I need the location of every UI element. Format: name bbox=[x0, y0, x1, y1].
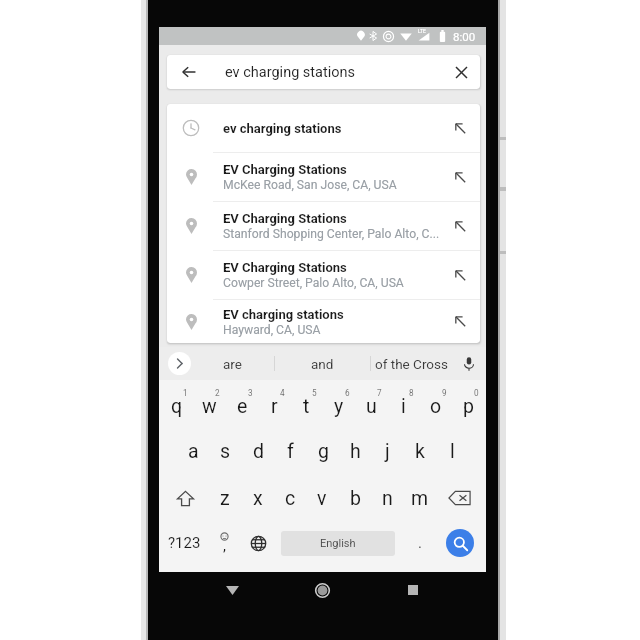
button[interactable]: Insert suggestion bbox=[447, 153, 473, 201]
button[interactable]: x bbox=[242, 476, 274, 520]
button[interactable]: Back bbox=[167, 55, 480, 89]
button[interactable]: Shift bbox=[161, 476, 209, 520]
staticText: v bbox=[317, 487, 327, 510]
button[interactable]: Backspace bbox=[435, 476, 483, 520]
staticText: English bbox=[320, 537, 356, 550]
button[interactable]: are bbox=[192, 347, 272, 380]
staticText: m bbox=[411, 487, 429, 510]
staticText: p bbox=[463, 395, 474, 418]
staticText: EV Charging Stations bbox=[223, 260, 347, 275]
staticText: Stanford Shopping Center, Palo Alto, C..… bbox=[223, 227, 440, 241]
button[interactable]: k bbox=[404, 429, 436, 473]
staticText: u bbox=[366, 395, 377, 418]
staticText: b bbox=[350, 487, 361, 510]
staticText: z bbox=[220, 487, 230, 510]
button[interactable]: z bbox=[209, 476, 241, 520]
staticText: n bbox=[382, 487, 393, 510]
staticText: and bbox=[311, 356, 334, 372]
button[interactable]: i bbox=[387, 384, 419, 428]
button[interactable]: Change language bbox=[242, 522, 274, 564]
button[interactable]: ?123 bbox=[162, 522, 206, 564]
button[interactable]: s bbox=[209, 429, 241, 473]
button[interactable]: h bbox=[339, 429, 371, 473]
button[interactable]: c bbox=[274, 476, 306, 520]
button[interactable]: ev charging stations bbox=[167, 104, 480, 152]
button[interactable]: Clear search bbox=[444, 55, 478, 89]
button[interactable]: and bbox=[282, 347, 362, 380]
button[interactable]: l bbox=[436, 429, 468, 473]
button[interactable]: g bbox=[307, 429, 339, 473]
button[interactable]: j bbox=[371, 429, 403, 473]
button[interactable]: o bbox=[420, 384, 452, 428]
button[interactable]: p bbox=[452, 384, 484, 428]
button[interactable]: b bbox=[339, 476, 371, 520]
staticText: ev charging stations bbox=[225, 64, 356, 81]
staticText: h bbox=[350, 440, 361, 463]
button[interactable]: Insert suggestion bbox=[447, 104, 473, 152]
staticText: 6 bbox=[345, 388, 350, 398]
button[interactable]: EV Charging Stations bbox=[167, 251, 480, 299]
button[interactable]: t bbox=[290, 384, 322, 428]
staticText: LTE bbox=[418, 28, 426, 34]
staticText: 1 bbox=[183, 388, 188, 398]
button[interactable]: Insert suggestion bbox=[447, 300, 473, 343]
button[interactable]: u bbox=[355, 384, 387, 428]
button[interactable]: . bbox=[404, 522, 436, 564]
button[interactable]: Back bbox=[221, 579, 243, 601]
staticText: a bbox=[188, 440, 199, 463]
button[interactable]: EV Charging Stations bbox=[167, 153, 480, 201]
staticText: 4 bbox=[280, 388, 285, 398]
staticText: f bbox=[287, 440, 294, 463]
button[interactable]: r bbox=[258, 384, 290, 428]
button[interactable]: EV charging stations bbox=[167, 300, 480, 343]
button[interactable]: Insert suggestion bbox=[447, 251, 473, 299]
button[interactable]: Voice input bbox=[455, 347, 483, 380]
staticText: c bbox=[285, 487, 296, 510]
staticText: 0 bbox=[474, 388, 479, 398]
button[interactable]: English bbox=[281, 531, 395, 556]
button[interactable]: Search bbox=[446, 529, 474, 557]
button[interactable]: Back bbox=[171, 55, 206, 89]
staticText: 7 bbox=[377, 388, 382, 398]
staticText: q bbox=[171, 395, 183, 418]
button[interactable]: e bbox=[226, 384, 258, 428]
staticText: , bbox=[223, 537, 226, 555]
button[interactable]: Home bbox=[311, 579, 333, 601]
staticText: EV Charging Stations bbox=[223, 162, 347, 177]
button[interactable]: m bbox=[404, 476, 436, 520]
button[interactable]: v bbox=[306, 476, 338, 520]
staticText: y bbox=[334, 395, 344, 418]
staticText: i bbox=[401, 395, 406, 418]
button[interactable]: q bbox=[161, 384, 193, 428]
button[interactable]: Insert suggestion bbox=[447, 202, 473, 250]
button[interactable]: y bbox=[323, 384, 355, 428]
staticText: j bbox=[385, 440, 390, 463]
staticText: are bbox=[223, 356, 242, 372]
staticText: 2 bbox=[215, 388, 220, 398]
button[interactable]: n bbox=[371, 476, 403, 520]
staticText: ?123 bbox=[168, 534, 201, 552]
staticText: w bbox=[202, 395, 217, 418]
staticText: EV charging stations bbox=[223, 307, 344, 322]
staticText: EV Charging Stations bbox=[223, 211, 347, 226]
staticText: l bbox=[450, 440, 455, 463]
staticText: Cowper Street, Palo Alto, CA, USA bbox=[223, 276, 404, 290]
staticText: 5 bbox=[312, 388, 317, 398]
button[interactable]: , bbox=[208, 522, 240, 564]
button[interactable]: of the Cross bbox=[371, 347, 451, 380]
button[interactable]: d bbox=[242, 429, 274, 473]
button[interactable]: Recent apps bbox=[402, 579, 424, 601]
button[interactable]: f bbox=[274, 429, 306, 473]
button[interactable]: Expand suggestions bbox=[164, 347, 194, 380]
staticText: 8 bbox=[409, 388, 414, 398]
button[interactable]: EV Charging Stations bbox=[167, 202, 480, 250]
button[interactable]: a bbox=[177, 429, 209, 473]
staticText: e bbox=[237, 395, 248, 418]
staticText: r bbox=[271, 395, 278, 418]
button[interactable]: w bbox=[193, 384, 225, 428]
staticText: . bbox=[418, 534, 422, 552]
staticText: 9 bbox=[442, 388, 447, 398]
staticText: s bbox=[220, 440, 231, 463]
staticText: o bbox=[430, 395, 442, 418]
staticText: x bbox=[253, 487, 263, 510]
